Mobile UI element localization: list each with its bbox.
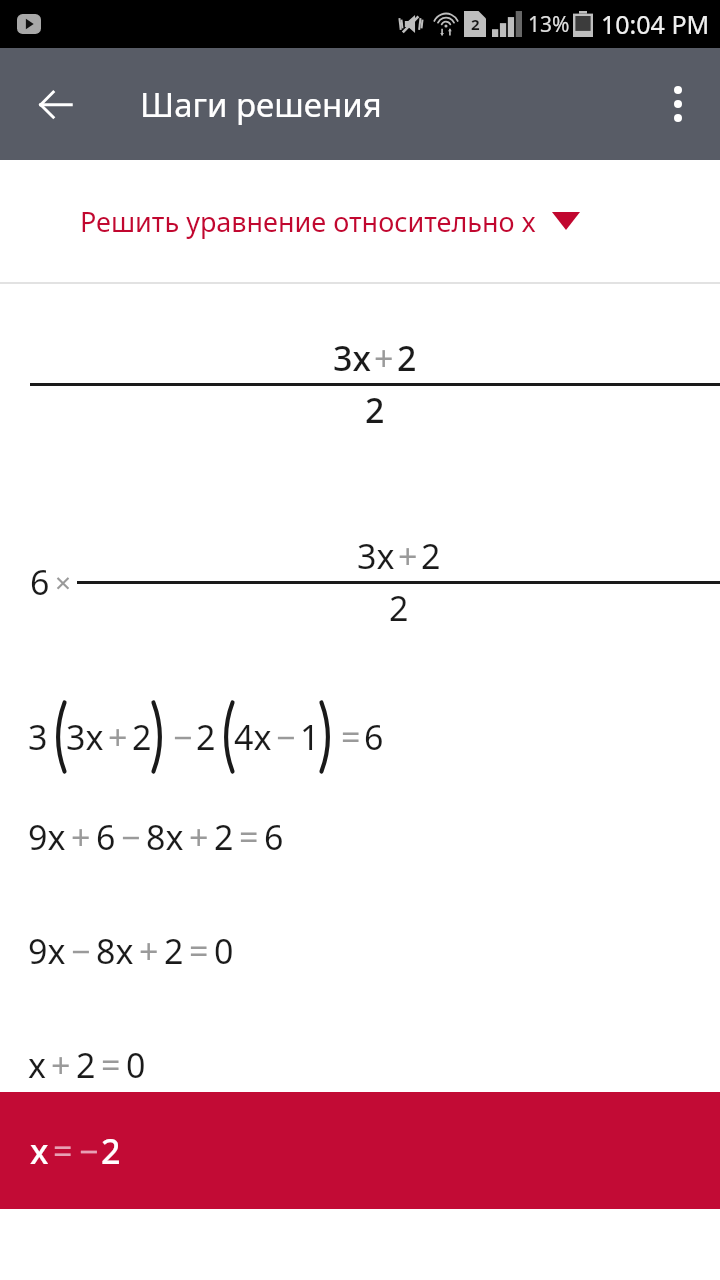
staticText: 9x	[28, 928, 66, 974]
staticText: 8x	[146, 814, 184, 860]
staticText: 3	[28, 714, 48, 760]
staticText: 2	[164, 928, 184, 974]
staticText: 3x	[66, 714, 104, 760]
staticText: 2	[101, 1128, 121, 1174]
staticText: −	[173, 714, 193, 760]
staticText: 1	[300, 714, 320, 760]
staticText: 6	[364, 714, 384, 760]
staticText: 0	[126, 1042, 146, 1088]
staticText: =	[53, 1128, 73, 1174]
staticText: −	[79, 1128, 99, 1174]
staticText: =	[189, 928, 209, 974]
staticText: +	[374, 335, 394, 381]
staticText: +	[108, 714, 128, 760]
staticText: −	[276, 714, 296, 760]
staticText: 6	[96, 814, 116, 860]
staticText: −	[71, 928, 91, 974]
staticText: +	[139, 928, 159, 974]
staticText: 6	[30, 559, 50, 605]
staticText: ×	[55, 563, 72, 601]
staticText: =	[239, 814, 259, 860]
staticText: 2	[196, 714, 216, 760]
staticText: −	[121, 814, 141, 860]
staticText: 2	[76, 1042, 96, 1088]
staticText: 2	[214, 814, 234, 860]
staticText: 2	[389, 585, 409, 631]
staticText: =	[341, 714, 361, 760]
staticText: 2	[471, 14, 480, 34]
staticText: =	[101, 1042, 121, 1088]
staticText: x	[30, 1128, 49, 1174]
staticText: 2	[132, 714, 152, 760]
staticText: +	[189, 814, 209, 860]
staticText: 9x	[28, 814, 66, 860]
staticText: 8x	[96, 928, 134, 974]
staticText: 10:04 PM	[601, 7, 710, 41]
staticText: 4x	[234, 714, 272, 760]
staticText: +	[71, 814, 91, 860]
button[interactable]: Ещё	[646, 72, 710, 136]
staticText: x	[28, 1042, 46, 1088]
staticText: 2	[397, 335, 417, 381]
staticText: 6	[264, 814, 284, 860]
staticText: 13%	[528, 10, 570, 39]
staticText: Шаги решения	[140, 82, 382, 127]
staticText: +	[51, 1042, 71, 1088]
staticText: 3x	[357, 533, 395, 579]
staticText: +	[398, 533, 418, 579]
staticText: Решить уравнение относительно x	[80, 203, 536, 240]
staticText: 3x	[333, 335, 371, 381]
staticText: 2	[421, 533, 441, 579]
button[interactable]: Решить уравнение относительно x	[0, 160, 720, 282]
staticText: 0	[214, 928, 234, 974]
button[interactable]: Назад	[22, 70, 90, 138]
staticText: 2	[365, 387, 385, 433]
button[interactable]: x	[0, 1092, 720, 1209]
